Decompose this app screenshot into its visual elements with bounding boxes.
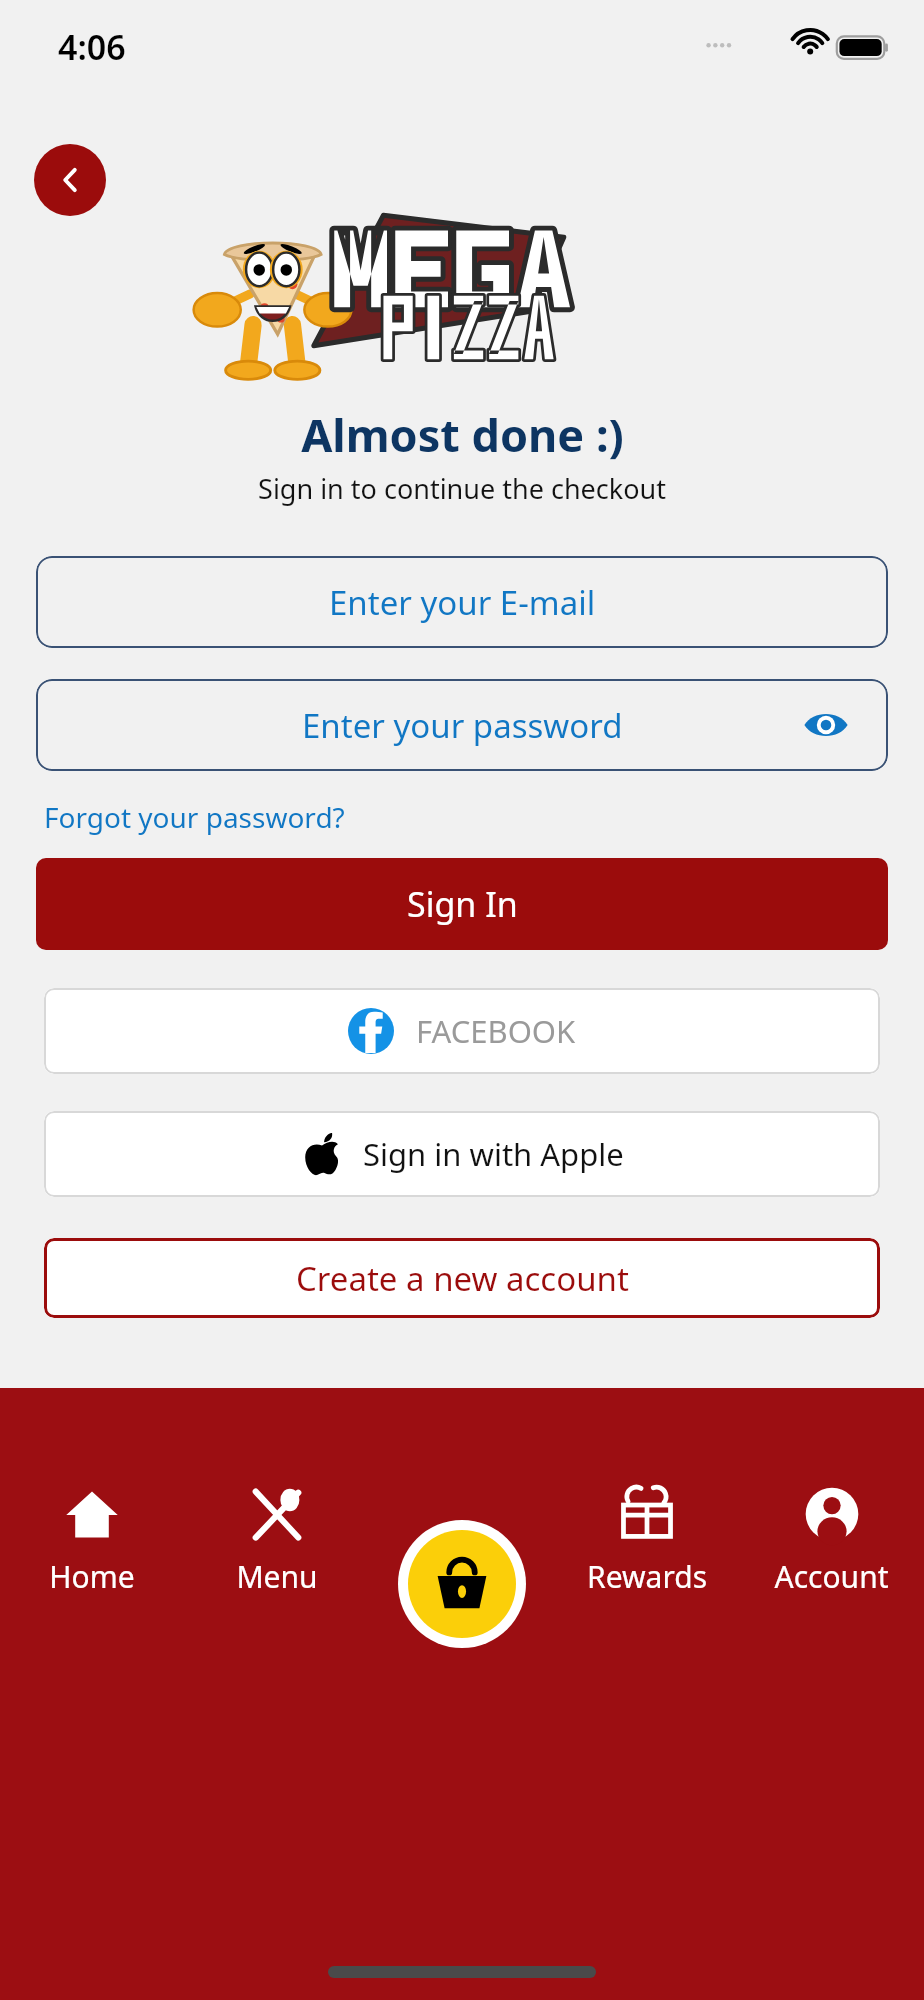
staticText: Account [774, 1556, 889, 1597]
button[interactable]: Sign In [36, 858, 888, 950]
button[interactable]: Account [739, 1434, 924, 1734]
staticText: Rewards [587, 1556, 707, 1597]
staticText: Sign In [407, 881, 518, 927]
staticText: 4:06 [58, 24, 126, 70]
staticText: Enter your E-mail [329, 580, 596, 625]
button[interactable]: Sign in with Apple [44, 1111, 880, 1197]
staticText: Create a new account [296, 1256, 629, 1301]
button[interactable]: Enter your password [36, 679, 888, 771]
button[interactable]: Cart [398, 1520, 526, 1648]
button[interactable]: Home [0, 1434, 184, 1734]
staticText: Almost done :) [301, 404, 624, 465]
staticText: Home [49, 1556, 135, 1597]
button[interactable]: Create a new account [44, 1238, 880, 1318]
button[interactable]: Forgot your password? [36, 792, 353, 842]
staticText: Sign in to continue the checkout [258, 470, 666, 507]
button[interactable]: Enter your E-mail [36, 556, 888, 648]
button[interactable]: Rewards [554, 1434, 739, 1734]
staticText: Sign in with Apple [363, 1133, 624, 1175]
button[interactable]: Back [34, 144, 106, 216]
button[interactable]: Menu [184, 1434, 369, 1734]
staticText: Menu [236, 1556, 318, 1597]
staticText: FACEBOOK [416, 1010, 576, 1052]
staticText: Forgot your password? [44, 798, 345, 836]
button[interactable]: Show password [800, 699, 852, 751]
staticText: Enter your password [302, 703, 623, 748]
button[interactable]: FACEBOOK [44, 988, 880, 1074]
